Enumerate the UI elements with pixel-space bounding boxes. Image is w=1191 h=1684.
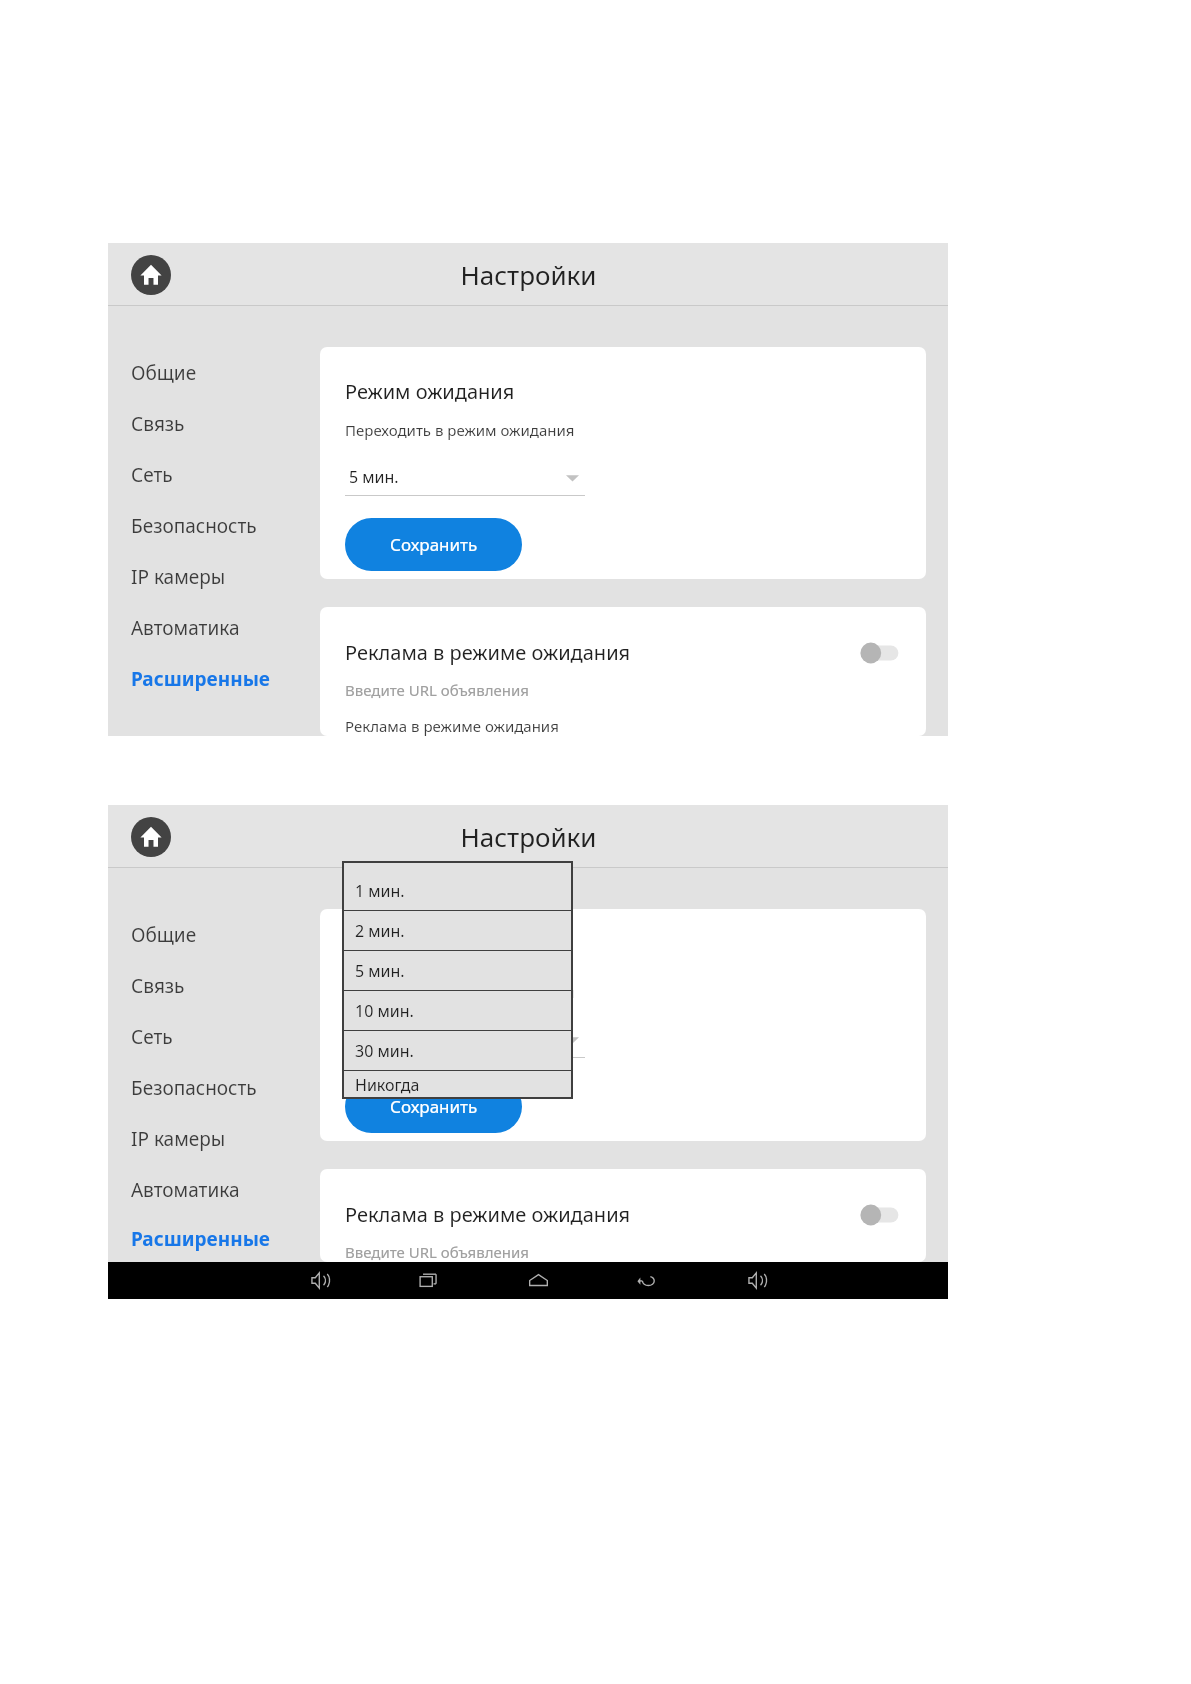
staticText: Никогда — [355, 1074, 420, 1096]
button[interactable]: Back — [631, 1264, 664, 1297]
staticText: Автоматика — [131, 1177, 240, 1203]
staticText: Настройки — [460, 257, 597, 292]
button[interactable]: Автоматика — [131, 602, 320, 653]
staticText: Автоматика — [131, 615, 240, 641]
button[interactable]: Общие — [131, 909, 320, 960]
button[interactable]: Сохранить — [345, 518, 522, 571]
staticText: Реклама в режиме ожидания — [345, 716, 559, 736]
staticText: Общие — [131, 922, 197, 948]
button[interactable]: Безопасность — [131, 500, 320, 551]
button[interactable]: Общие — [131, 347, 320, 398]
button[interactable]: 30 мин. — [343, 1031, 572, 1071]
staticText: Реклама в режиме ожидания — [345, 1201, 857, 1228]
staticText: Сеть — [131, 462, 173, 488]
staticText: Режим ожидания — [345, 940, 515, 967]
button[interactable]: Сохранить — [345, 1080, 522, 1133]
button[interactable]: Связь — [131, 960, 320, 1011]
button[interactable]: Standby advertising toggle — [857, 640, 903, 666]
button[interactable]: Volume down — [303, 1264, 336, 1297]
button[interactable]: Расширенные — [131, 653, 320, 704]
staticText: Расширенные — [131, 666, 270, 692]
staticText: Безопасность — [131, 1075, 257, 1101]
button[interactable]: Автоматика — [131, 1164, 320, 1215]
button[interactable]: Standby advertising toggle — [857, 1202, 903, 1228]
staticText: Сохранить — [390, 533, 478, 556]
staticText: 10 мин. — [355, 1000, 414, 1022]
button[interactable]: 5 мин. — [343, 951, 572, 991]
staticText: Введите URL объявления — [345, 680, 529, 700]
button[interactable]: IP камеры — [131, 1113, 320, 1164]
staticText: 5 мин. — [349, 1028, 399, 1050]
staticText: 5 мин. — [355, 960, 405, 982]
staticText: Реклама в режиме ожидания — [345, 639, 857, 666]
button[interactable]: 2 мин. — [343, 911, 572, 951]
button[interactable]: Сеть — [131, 449, 320, 500]
button[interactable]: 5 мин. — [345, 462, 585, 496]
button[interactable]: Сеть — [131, 1011, 320, 1062]
staticText: Введите URL объявления — [345, 1242, 529, 1262]
staticText: Настройки — [460, 819, 597, 854]
staticText: Сеть — [131, 1024, 173, 1050]
button[interactable]: Recent apps — [412, 1264, 445, 1297]
button[interactable]: 1 мин. — [343, 871, 572, 911]
staticText: Общие — [131, 360, 197, 386]
staticText: IP камеры — [131, 1126, 226, 1152]
button[interactable]: IP камеры — [131, 551, 320, 602]
staticText: 1 мин. — [355, 880, 405, 902]
button[interactable]: Безопасность — [131, 1062, 320, 1113]
staticText: 2 мин. — [355, 920, 405, 942]
button[interactable]: 5 мин. — [345, 1024, 585, 1058]
staticText: Безопасность — [131, 513, 257, 539]
staticText: 30 мин. — [355, 1040, 414, 1062]
staticText: Переходить в режим ожидания — [345, 420, 575, 440]
button[interactable]: Расширенные — [131, 1215, 320, 1262]
staticText: Расширенные — [131, 1226, 270, 1252]
button[interactable]: Связь — [131, 398, 320, 449]
button[interactable]: Home — [129, 815, 173, 859]
staticText: Связь — [131, 411, 185, 437]
staticText: Переходить в режим ожидания — [345, 982, 575, 1002]
button[interactable]: Home — [522, 1264, 555, 1297]
staticText: IP камеры — [131, 564, 226, 590]
staticText: Сохранить — [390, 1095, 478, 1118]
button[interactable]: Home — [129, 253, 173, 297]
button[interactable]: Никогда — [343, 1071, 572, 1098]
staticText: Связь — [131, 973, 185, 999]
button[interactable]: Volume up — [740, 1264, 773, 1297]
staticText: Режим ожидания — [345, 378, 515, 405]
staticText: 5 мин. — [349, 466, 399, 488]
button[interactable]: 10 мин. — [343, 991, 572, 1031]
